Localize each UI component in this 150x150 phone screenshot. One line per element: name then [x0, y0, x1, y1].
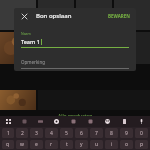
button[interactable]: Toetsenbord [0, 116, 16, 127]
staticText: o [125, 141, 129, 148]
button[interactable]: Sluiten [19, 11, 29, 21]
button[interactable]: Sticker [99, 116, 116, 127]
button[interactable]: Naam [21, 31, 129, 48]
button[interactable] [0, 0, 36, 30]
staticText: 7 [95, 130, 98, 137]
staticText: Bon opslaan [36, 12, 72, 20]
button[interactable]: q [2, 140, 14, 149]
staticText: t [66, 141, 68, 148]
button[interactable] [114, 0, 150, 30]
button[interactable]: 8 [105, 128, 118, 138]
button[interactable] [114, 32, 150, 64]
staticText: 4 [50, 130, 53, 137]
button[interactable] [76, 32, 112, 64]
button[interactable]: 6 [75, 128, 88, 138]
button[interactable]: w [16, 140, 28, 149]
button[interactable]: 5 [60, 128, 73, 138]
button[interactable] [76, 0, 112, 30]
button[interactable]: 2 [16, 128, 28, 138]
staticText: i [111, 141, 113, 148]
button[interactable]: Alle producten [0, 110, 150, 122]
button[interactable]: Opmerking [21, 59, 129, 69]
button[interactable]: GIF [32, 116, 48, 127]
button[interactable]: Emoji [65, 116, 82, 127]
staticText: p [140, 141, 144, 148]
button[interactable]: y [75, 140, 88, 149]
button[interactable]: Thema [16, 116, 32, 127]
staticText: e [35, 141, 38, 148]
button[interactable]: Klembord [116, 116, 133, 127]
staticText: Alle producten [58, 113, 93, 120]
button[interactable]: 7 [90, 128, 103, 138]
button[interactable]: o [120, 140, 133, 149]
button[interactable] [0, 32, 36, 64]
button[interactable]: 4 [45, 128, 58, 138]
staticText: 6 [80, 130, 83, 137]
button[interactable] [0, 90, 36, 110]
button[interactable]: 3 [30, 128, 43, 138]
staticText: 2 [21, 130, 24, 137]
staticText: 1 [7, 130, 10, 137]
button[interactable] [38, 0, 74, 30]
staticText: BEWAREN [108, 13, 130, 19]
staticText: Opmerking [21, 59, 45, 65]
button[interactable]: i [105, 140, 118, 149]
staticText: q [6, 141, 10, 148]
staticText: Team 1 [21, 38, 40, 45]
button[interactable]: BEWAREN [107, 13, 131, 19]
button[interactable]: u [90, 140, 103, 149]
button[interactable] [38, 32, 74, 64]
button[interactable]: 9 [120, 128, 133, 138]
button[interactable]: Instellingen [48, 116, 65, 127]
staticText: 8 [110, 130, 113, 137]
button[interactable]: r [45, 140, 58, 149]
button[interactable]: Spraak [133, 116, 150, 127]
staticText: u [95, 141, 99, 148]
button[interactable]: e [30, 140, 43, 149]
staticText: 0 [140, 130, 143, 137]
staticText: Naam [21, 31, 31, 36]
staticText: w [20, 141, 24, 148]
button[interactable]: t [60, 140, 73, 149]
staticText: y [80, 141, 83, 148]
staticText: 3 [35, 130, 38, 137]
staticText: r [50, 141, 53, 148]
staticText: 9 [125, 130, 128, 137]
button[interactable]: p [135, 140, 148, 149]
staticText: 5 [65, 130, 68, 137]
button[interactable]: 0 [135, 128, 148, 138]
button[interactable]: Plakken [82, 116, 99, 127]
button[interactable]: 1 [2, 128, 14, 138]
